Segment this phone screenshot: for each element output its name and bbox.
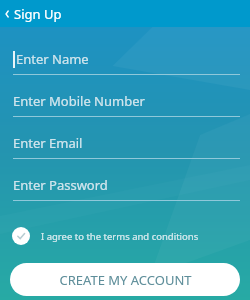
button[interactable]: Enter Email: [0, 134, 250, 159]
button[interactable]: CREATE MY ACCOUNT: [10, 263, 240, 296]
staticText: I agree to the terms and conditions: [41, 230, 199, 243]
staticText: Enter Email: [13, 134, 83, 152]
staticText: Sign Up: [14, 5, 62, 23]
staticText: CREATE MY ACCOUNT: [59, 271, 192, 289]
button[interactable]: Enter Password: [0, 176, 250, 201]
staticText: Enter Password: [13, 176, 108, 194]
button[interactable]: I agree to the terms and conditions: [0, 223, 250, 249]
button[interactable]: Enter Mobile Number: [0, 92, 250, 117]
button[interactable]: Back: [0, 0, 14, 27]
button[interactable]: Enter Name: [0, 50, 250, 75]
staticText: Enter Mobile Number: [13, 92, 145, 110]
staticText: Enter Name: [16, 50, 89, 68]
